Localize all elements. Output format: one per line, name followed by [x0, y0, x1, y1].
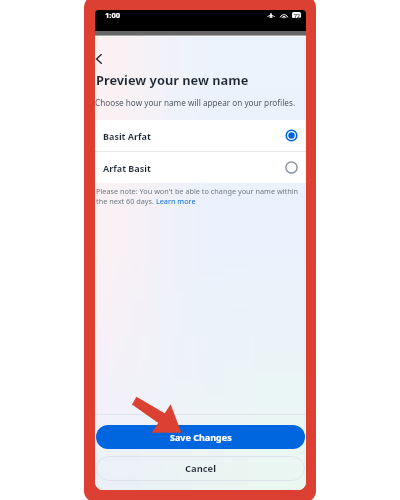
- staticText: Basit Arfat: [103, 130, 151, 142]
- button[interactable]: Arfat Basit: [95, 152, 306, 183]
- staticText: Save Changes: [170, 431, 232, 443]
- button[interactable]: Back: [95, 49, 115, 67]
- staticText: Choose how your name will appear on your…: [95, 97, 296, 108]
- staticText: 1:00: [105, 10, 121, 20]
- staticText: Cancel: [185, 462, 217, 475]
- staticText: 72: [294, 12, 300, 18]
- staticText: Preview your new name: [96, 71, 249, 88]
- button[interactable]: Save Changes: [96, 425, 305, 449]
- staticText: Please note: You won't be able to change…: [96, 186, 305, 206]
- button[interactable]: Basit Arfat: [95, 120, 306, 151]
- button[interactable]: Cancel: [96, 456, 305, 481]
- staticText: Arfat Basit: [103, 162, 151, 174]
